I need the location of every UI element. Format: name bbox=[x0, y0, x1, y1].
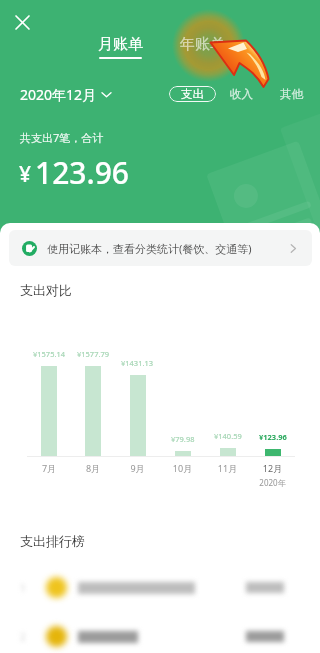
staticText: 11月 bbox=[205, 462, 250, 474]
button[interactable]: 其他 bbox=[277, 84, 306, 104]
staticText: 7月 bbox=[27, 462, 71, 474]
staticText: 123.96 bbox=[35, 152, 129, 193]
button[interactable]: 使用记账本，查看分类统计(餐饮、交通等) bbox=[9, 230, 312, 266]
staticText: 12月 bbox=[250, 462, 295, 474]
staticText: 其他 bbox=[280, 87, 303, 101]
staticText: 支出排行榜 bbox=[20, 533, 85, 549]
button[interactable]: 2 bbox=[0, 612, 320, 653]
button[interactable]: Close bbox=[6, 6, 38, 38]
staticText: ¥123.96 bbox=[259, 432, 287, 442]
button[interactable]: 2020年12月 bbox=[20, 85, 111, 104]
staticText: 收入 bbox=[230, 87, 253, 101]
staticText: 支出对比 bbox=[20, 282, 72, 298]
button[interactable]: 月账单 bbox=[96, 35, 145, 59]
staticText: 9月 bbox=[115, 462, 160, 474]
staticText: 10月 bbox=[160, 462, 205, 474]
staticText: ¥79.98 bbox=[171, 434, 195, 444]
staticText: 2020年 bbox=[250, 477, 295, 488]
staticText: ¥1575.14 bbox=[33, 349, 66, 359]
staticText: 共支出7笔，合计 bbox=[20, 130, 104, 145]
button[interactable]: 收入 bbox=[227, 84, 256, 104]
staticText: ¥140.59 bbox=[214, 431, 242, 441]
staticText: 支出 bbox=[181, 87, 204, 101]
staticText: ¥1577.79 bbox=[77, 349, 110, 359]
button[interactable]: 支出 bbox=[169, 86, 216, 102]
staticText: ¥ bbox=[19, 160, 32, 189]
staticText: ¥1431.13 bbox=[121, 358, 154, 368]
staticText: 2020年12月 bbox=[20, 85, 97, 104]
staticText: 8月 bbox=[71, 462, 115, 474]
staticText: 月账单 bbox=[98, 35, 143, 54]
staticText: 使用记账本，查看分类统计(餐饮、交通等) bbox=[47, 241, 252, 256]
staticText: 年账单 bbox=[180, 35, 225, 54]
button[interactable]: 1 bbox=[0, 563, 320, 612]
button[interactable]: 年账单 bbox=[178, 35, 227, 59]
